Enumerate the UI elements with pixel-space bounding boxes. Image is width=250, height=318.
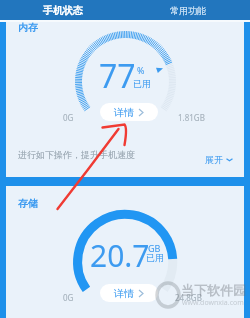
staticText: 1.81GB — [178, 112, 205, 123]
staticText: 已用 — [146, 252, 164, 263]
staticText: 展开 — [205, 154, 223, 165]
staticText: 20.7 — [90, 235, 150, 276]
button[interactable]: 常用功能 — [125, 0, 250, 20]
staticText: 已用 — [133, 78, 151, 89]
button[interactable]: 展开 — [205, 154, 233, 165]
staticText: 详情 — [114, 287, 134, 300]
staticText: GB — [148, 242, 161, 254]
staticText: 详情 — [114, 106, 134, 119]
staticText: 存储 — [18, 197, 38, 210]
staticText: 常用功能 — [170, 5, 206, 16]
staticText: 手机状态 — [43, 4, 83, 17]
staticText: 进行如下操作，提升手机速度 — [18, 149, 135, 160]
staticText: % — [137, 64, 145, 76]
staticText: 当下软件园 — [181, 282, 246, 298]
staticText: 24.8GB — [175, 292, 202, 303]
button[interactable]: 详情 — [100, 103, 158, 121]
button[interactable]: 手机状态 — [0, 0, 125, 20]
staticText: www.downxia.com — [182, 298, 244, 308]
staticText: 0G — [63, 292, 74, 303]
button[interactable]: 详情 — [100, 284, 158, 302]
staticText: 0G — [63, 112, 74, 123]
staticText: 内存 — [18, 21, 38, 34]
staticText: 77 — [99, 54, 136, 98]
